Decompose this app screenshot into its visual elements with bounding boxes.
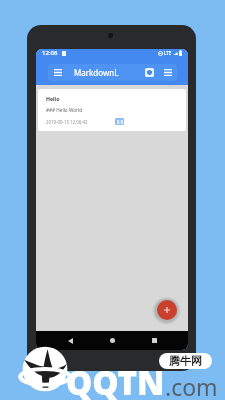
- staticText: MarkdownL: [74, 67, 119, 78]
- button[interactable]: Security: [141, 64, 157, 81]
- button[interactable]: Open navigation drawer: [48, 64, 67, 81]
- button[interactable]: Back: [56, 331, 84, 350]
- staticText: 腾牛网: [169, 354, 202, 368]
- staticText: Hello: [46, 95, 60, 102]
- button[interactable]: Hello: [38, 89, 186, 131]
- staticText: QQTN: [66, 360, 165, 400]
- button[interactable]: Home: [98, 331, 126, 350]
- button[interactable]: Recent apps: [140, 331, 168, 350]
- staticText: ### Hello World: [46, 107, 83, 113]
- button[interactable]: More options: [159, 64, 177, 81]
- staticText: .com: [165, 371, 218, 400]
- button[interactable]: Add note: [157, 300, 177, 320]
- staticText: LTE: [164, 50, 172, 56]
- staticText: 12:06: [42, 49, 58, 57]
- staticText: 2019-09-15 12:06:42: [46, 119, 88, 125]
